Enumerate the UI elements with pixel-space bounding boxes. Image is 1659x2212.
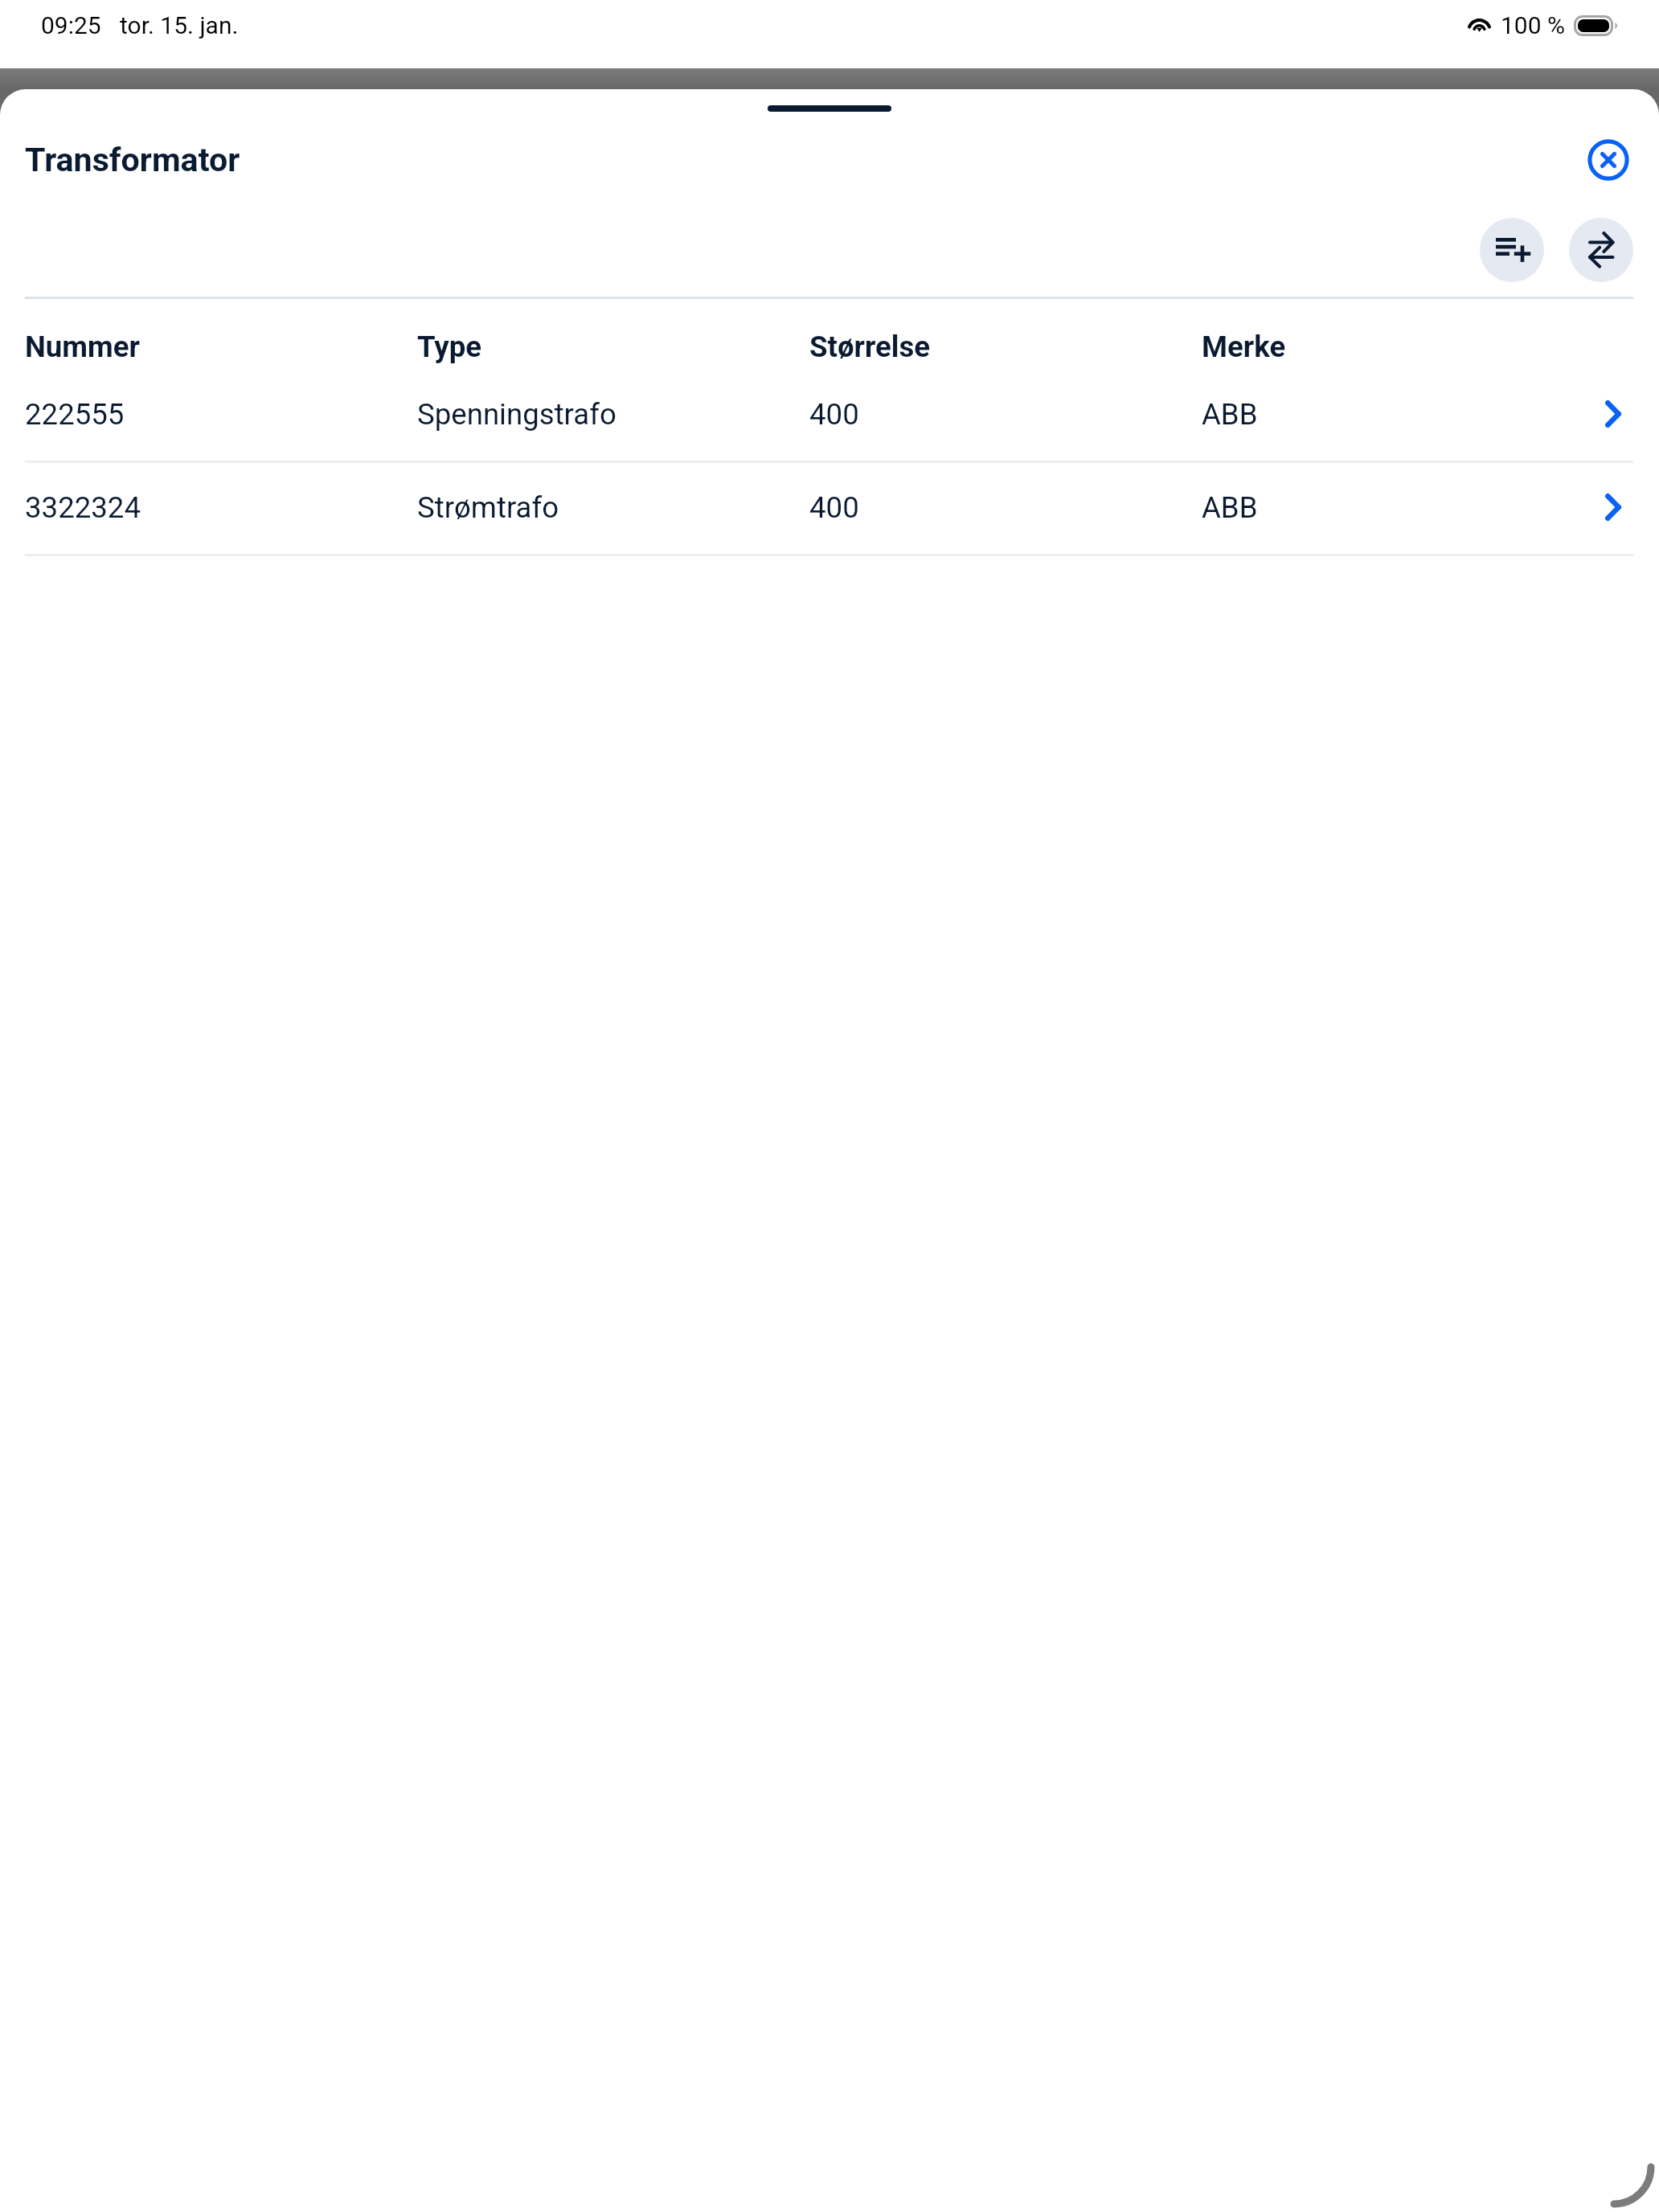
staticText: Nummer — [25, 330, 140, 364]
staticText: Transformator — [25, 141, 240, 179]
staticText: tor. 15. jan. — [120, 11, 239, 39]
button[interactable]: 3322324 — [0, 461, 1659, 554]
staticText: Type — [417, 330, 482, 364]
staticText: 09:25 — [41, 11, 101, 39]
button[interactable]: 222555 — [0, 367, 1659, 461]
staticText: Merke — [1202, 330, 1286, 364]
staticText: Spenningstrafo — [417, 397, 616, 432]
staticText: 222555 — [25, 397, 125, 432]
staticText: Strømtrafo — [417, 490, 559, 525]
button[interactable]: Lukk — [1583, 134, 1634, 186]
staticText: 100 % — [1501, 11, 1565, 39]
staticText: ABB — [1202, 397, 1258, 432]
staticText: 400 — [809, 490, 859, 525]
staticText: 400 — [809, 397, 859, 432]
button[interactable]: Legg til rad — [1480, 218, 1544, 282]
staticText: ABB — [1202, 490, 1258, 525]
staticText: 3322324 — [25, 490, 141, 525]
staticText: Størrelse — [809, 330, 931, 364]
button[interactable]: Bytt rekkefolge — [1569, 218, 1633, 282]
